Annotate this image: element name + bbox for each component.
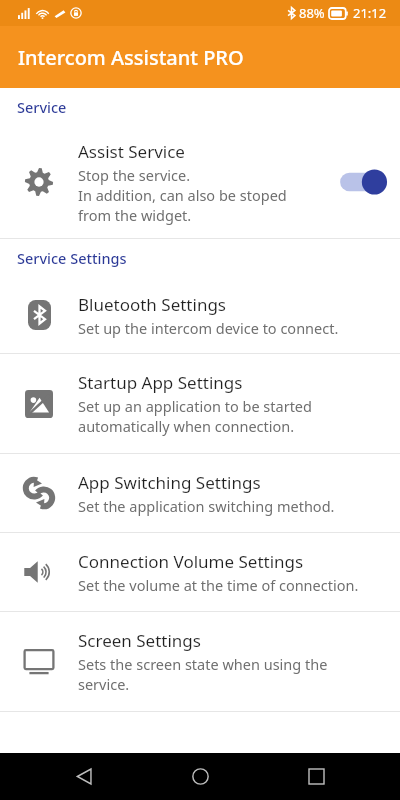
staticText: automatically when connection. bbox=[78, 416, 295, 436]
staticText: In addition, can also be stoped bbox=[78, 185, 287, 205]
button[interactable]: Assist Service bbox=[0, 126, 400, 239]
staticText: Set the volume at the time of connection… bbox=[78, 575, 359, 595]
button[interactable]: App Switching Settings bbox=[0, 454, 400, 533]
button[interactable]: Bluetooth Settings bbox=[0, 277, 400, 354]
button[interactable]: Home bbox=[168, 753, 232, 800]
button[interactable]: Screen Settings bbox=[0, 612, 400, 712]
staticText: Connection Volume Settings bbox=[78, 550, 304, 573]
staticText: Set the application switching method. bbox=[78, 496, 335, 516]
staticText: Assist Service bbox=[78, 140, 185, 163]
button[interactable]: Startup App Settings bbox=[0, 354, 400, 454]
staticText: App Switching Settings bbox=[78, 471, 261, 494]
staticText: Intercom Assistant PRO bbox=[18, 44, 244, 71]
staticText: Service Settings bbox=[17, 248, 127, 268]
button[interactable]: Back bbox=[52, 753, 116, 800]
staticText: from the widget. bbox=[78, 205, 192, 225]
staticText: Startup App Settings bbox=[78, 371, 243, 394]
staticText: Sets the screen state when using the bbox=[78, 654, 328, 674]
staticText: Bluetooth Settings bbox=[78, 293, 226, 316]
staticText: Service bbox=[17, 97, 67, 117]
staticText: 88% bbox=[299, 4, 325, 22]
staticText: Set up the intercom device to connect. bbox=[78, 318, 339, 338]
button[interactable]: Assist Service toggle bbox=[337, 167, 389, 197]
button[interactable]: Recent apps bbox=[284, 753, 348, 800]
staticText: Stop the service. bbox=[78, 165, 191, 185]
staticText: Set up an application to be started bbox=[78, 396, 312, 416]
staticText: service. bbox=[78, 674, 130, 694]
staticText: 21:12 bbox=[353, 4, 387, 22]
button[interactable]: Connection Volume Settings bbox=[0, 533, 400, 612]
staticText: Screen Settings bbox=[78, 629, 201, 652]
